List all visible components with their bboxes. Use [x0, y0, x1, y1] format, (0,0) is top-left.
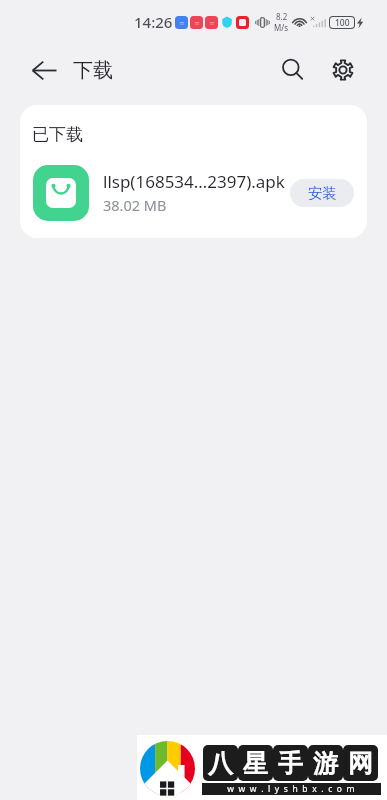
- button[interactable]: 设置: [324, 51, 361, 88]
- button[interactable]: 搜索: [274, 51, 311, 88]
- staticText: 已下载: [32, 124, 83, 145]
- staticText: M/s: [274, 22, 289, 33]
- staticText: 8.2: [276, 11, 288, 22]
- staticText: 手: [278, 748, 303, 779]
- staticText: llsp(168534…2397).apk: [103, 170, 285, 193]
- button[interactable]: 返回: [26, 52, 62, 88]
- button[interactable]: 安装: [290, 179, 354, 207]
- staticText: 网: [348, 748, 373, 779]
- staticText: 14:26: [134, 12, 173, 32]
- staticText: w w w . l y s h b x . c o m: [227, 783, 356, 795]
- staticText: 38.02 MB: [103, 195, 167, 215]
- staticText: 星: [243, 748, 268, 779]
- staticText: 安装: [308, 184, 337, 202]
- staticText: 下载: [73, 58, 113, 83]
- button[interactable]: llsp(168534…2397).apk: [20, 150, 367, 235]
- staticText: 游: [313, 748, 338, 779]
- staticText: 八: [208, 748, 233, 779]
- staticText: 100: [335, 17, 350, 28]
